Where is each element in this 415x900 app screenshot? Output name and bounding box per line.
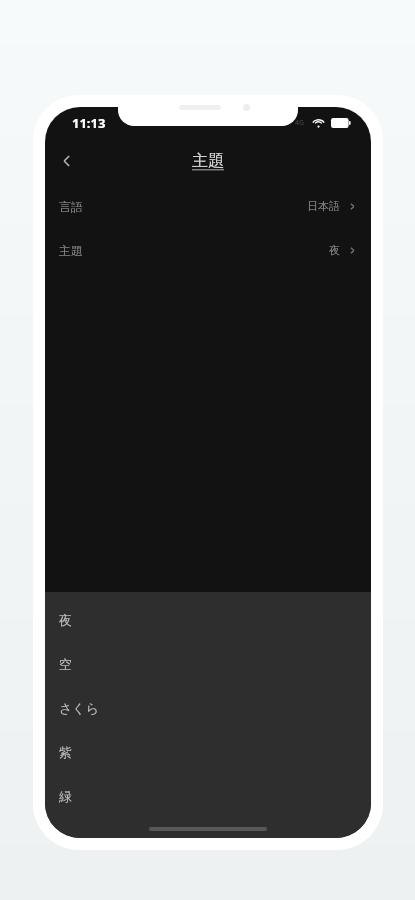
staticText: 紫 <box>59 744 72 760</box>
staticText: 主題 <box>192 151 224 171</box>
staticText: さくら <box>59 700 99 716</box>
staticText: 4G <box>295 118 305 128</box>
button[interactable]: 空 <box>45 642 371 686</box>
button[interactable]: 主題 <box>45 228 371 272</box>
staticText: 言語 <box>59 199 83 214</box>
button[interactable]: 紫 <box>45 730 371 774</box>
button[interactable]: さくら <box>45 686 371 730</box>
button[interactable]: 緑 <box>45 774 371 818</box>
staticText: 空 <box>59 656 72 672</box>
button[interactable]: 言語 <box>45 184 371 228</box>
button[interactable]: Back <box>45 139 89 183</box>
staticText: 11:13 <box>72 114 106 132</box>
button[interactable]: 夜 <box>45 598 371 642</box>
staticText: 夜 <box>329 243 340 257</box>
staticText: 夜 <box>59 612 72 628</box>
staticText: 日本語 <box>307 199 340 213</box>
staticText: 主題 <box>59 243 83 258</box>
staticText: 緑 <box>59 788 72 804</box>
